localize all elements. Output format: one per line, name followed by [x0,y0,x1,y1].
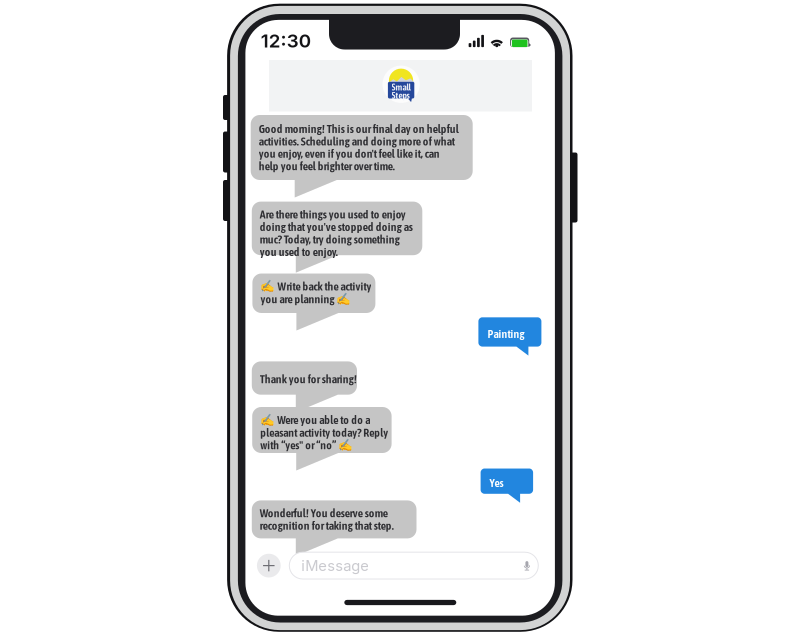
staticText: Good morning! This is our final day on h… [259,122,459,173]
staticText: Painting [487,327,524,340]
button[interactable]: Add attachment [257,554,281,577]
staticText: Yes [490,476,504,489]
staticText: ✍️ Were you able to do a pleasant activi… [260,413,388,452]
staticText: Are there things you used to enjoy doing… [260,208,413,258]
staticText: Wonderful! You deserve some recognition … [260,506,394,532]
staticText: Steps [391,90,409,101]
button[interactable]: iMessage [289,552,538,579]
staticText: iMessage [301,557,369,574]
staticText: Small [391,82,410,93]
staticText: 12:30 [261,29,311,52]
staticText: Thank you for sharing! [260,372,357,386]
staticText: ✍️ Write back the activity you are plann… [260,279,371,306]
